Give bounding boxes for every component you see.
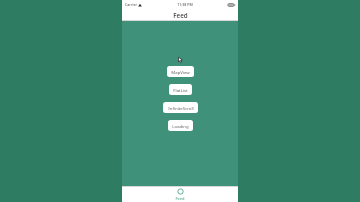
staticText: Carrier [125,2,137,7]
other: Pointer [178,57,183,63]
staticText: MapView [171,69,190,75]
button[interactable]: Feed [122,187,238,202]
staticText: Loading [172,123,189,129]
button[interactable]: MapView [167,66,194,77]
staticText: FlatList [173,87,188,93]
staticText: Feed [173,11,188,19]
button[interactable]: FlatList [169,84,192,95]
staticText: 11:38 PM [177,2,193,7]
button[interactable]: Loading [168,120,193,131]
staticText: Feed [175,196,185,201]
button[interactable]: InfiniteScroll [163,102,198,113]
staticText: InfiniteScroll [168,105,194,111]
